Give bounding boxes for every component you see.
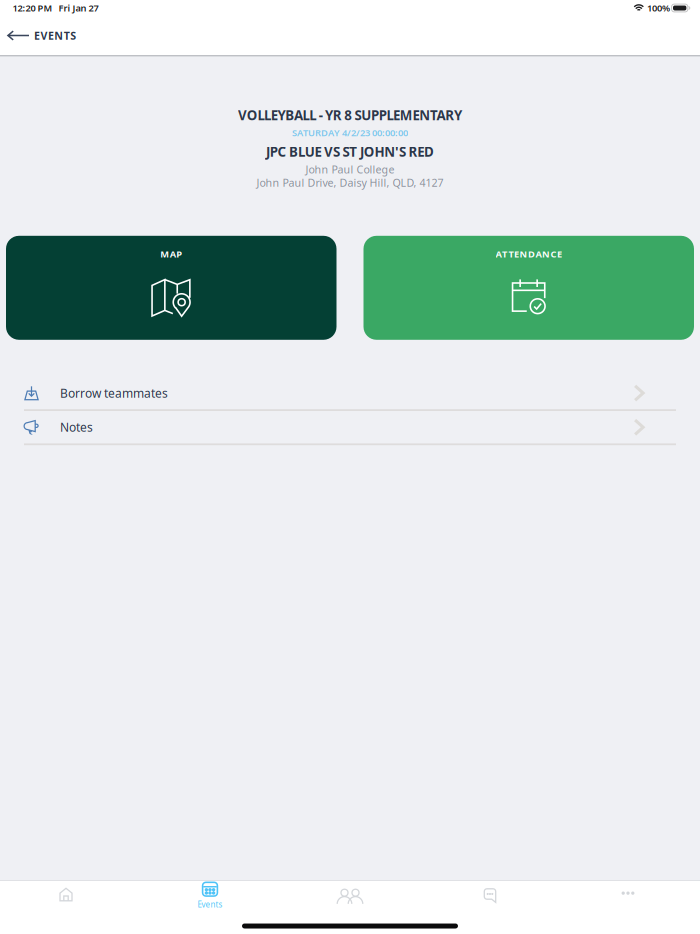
button[interactable]: Messages — [420, 878, 560, 915]
staticText: ATTENDANCE — [495, 248, 562, 260]
button[interactable]: MAP — [6, 236, 336, 340]
staticText: Notes — [60, 419, 93, 435]
button[interactable]: Home — [0, 878, 140, 915]
staticText: 100% — [647, 2, 670, 14]
button[interactable]: Teams — [280, 878, 420, 915]
button[interactable]: Borrow teammates — [0, 377, 700, 411]
staticText: Borrow teammates — [60, 385, 168, 401]
staticText: MAP — [160, 248, 182, 260]
staticText: JPC BLUE VS ST JOHN'S RED — [266, 143, 434, 160]
staticText: 12:20 PM — [13, 2, 53, 14]
staticText: John Paul Drive, Daisy Hill, QLD, 4127 — [256, 175, 443, 190]
staticText: SATURDAY 4/2/23 00:00:00 — [292, 126, 408, 139]
staticText: EVENTS — [34, 28, 76, 43]
staticText: VOLLEYBALL - YR 8 SUPPLEMENTARY — [238, 106, 462, 124]
button[interactable]: Events — [140, 878, 280, 915]
button[interactable]: EVENTS — [0, 16, 88, 55]
staticText: John Paul College — [305, 162, 394, 176]
button[interactable]: ATTENDANCE — [363, 236, 694, 340]
staticText: Events — [197, 899, 222, 910]
button[interactable]: Notes — [0, 411, 700, 445]
button[interactable]: More — [560, 878, 700, 915]
staticText: Fri Jan 27 — [59, 2, 99, 14]
